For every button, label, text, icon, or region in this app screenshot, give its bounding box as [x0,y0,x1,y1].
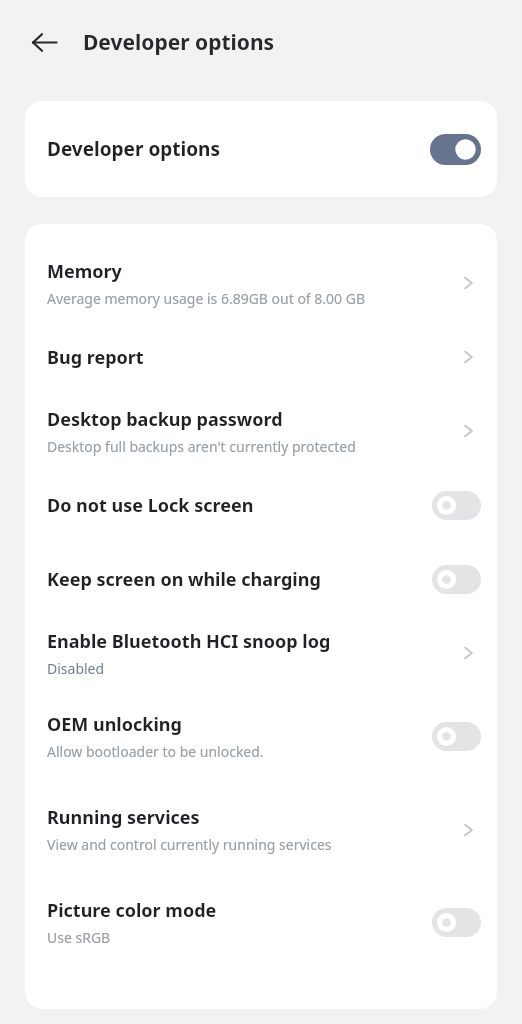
button[interactable]: Desktop backup password [25,394,497,468]
staticText: Desktop full backups aren't currently pr… [47,437,356,456]
button[interactable]: Bug report [25,320,497,394]
button[interactable]: OEM unlocking [25,690,497,783]
staticText: Memory [47,259,122,284]
staticText: Disabled [47,659,105,678]
staticText: Enable Bluetooth HCI snoop log [47,629,331,654]
staticText: Picture color mode [47,898,217,923]
button[interactable]: Back [22,20,66,64]
button[interactable]: Running services [25,783,497,876]
staticText: Average memory usage is 6.89GB out of 8.… [47,289,366,308]
staticText: OEM unlocking [47,712,182,737]
button[interactable]: Keep screen on while charging [25,542,497,616]
staticText: Use sRGB [47,928,111,947]
button[interactable]: Memory [25,246,497,320]
staticText: Allow bootloader to be unlocked. [47,742,264,761]
staticText: View and control currently running servi… [47,835,332,854]
button[interactable]: Developer options [25,101,497,197]
staticText: Bug report [47,345,144,370]
button[interactable]: Do not use Lock screen [25,468,497,542]
staticText: Desktop backup password [47,407,283,432]
staticText: Developer options [47,136,430,162]
button[interactable]: Picture color mode [25,876,497,969]
staticText: Running services [47,805,200,830]
staticText: Keep screen on while charging [47,567,321,592]
button[interactable]: Enable Bluetooth HCI snoop log [25,616,497,690]
staticText: Developer options [83,28,275,57]
staticText: Do not use Lock screen [47,493,254,518]
